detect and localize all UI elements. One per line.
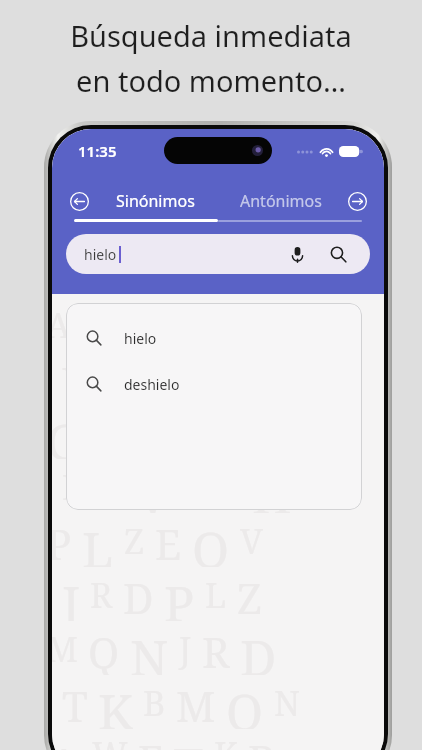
staticText: deshielo xyxy=(124,375,180,394)
staticText: A xyxy=(52,731,82,750)
staticText: T xyxy=(174,302,195,348)
staticText: R xyxy=(202,623,230,675)
staticText: T xyxy=(62,677,88,729)
staticText: U xyxy=(62,353,93,405)
staticText: L xyxy=(205,572,227,618)
button[interactable]: hielo xyxy=(66,234,370,274)
staticText: M xyxy=(176,677,216,729)
staticText: hielo xyxy=(124,329,157,348)
staticText: Z xyxy=(237,569,262,621)
button[interactable]: Previous xyxy=(66,188,92,214)
staticText: B xyxy=(143,680,166,726)
staticText: G xyxy=(52,407,82,459)
staticText: C xyxy=(141,356,162,402)
staticText: R xyxy=(90,572,113,618)
staticText: O xyxy=(192,515,230,567)
staticText: Búsqueda inmediata xyxy=(70,16,352,55)
staticText: V xyxy=(136,461,170,513)
staticText: H xyxy=(252,461,292,513)
button[interactable]: Search xyxy=(324,240,352,268)
button[interactable]: deshielo xyxy=(66,361,362,407)
staticText: K xyxy=(98,677,133,729)
staticText: E xyxy=(62,464,84,510)
staticText: P xyxy=(164,569,195,621)
staticText: Q xyxy=(226,677,264,729)
button[interactable]: Antónimos xyxy=(218,183,344,219)
staticText: J xyxy=(62,569,80,621)
staticText: P xyxy=(52,515,72,567)
staticText: F xyxy=(138,731,163,750)
button[interactable]: Next xyxy=(344,188,370,214)
staticText: B xyxy=(248,731,276,750)
staticText: W xyxy=(92,731,128,750)
staticText: N xyxy=(274,680,300,726)
staticText: B xyxy=(245,299,278,351)
staticText: V xyxy=(240,518,263,564)
staticText: K xyxy=(205,299,235,351)
staticText: L xyxy=(82,515,114,567)
staticText: O xyxy=(94,461,126,513)
staticText: J xyxy=(179,626,192,672)
button[interactable]: hielo xyxy=(66,315,362,361)
staticText: F xyxy=(134,299,164,351)
staticText: 11:35 xyxy=(78,141,117,161)
staticText: D xyxy=(240,623,277,675)
staticText: S xyxy=(103,353,131,405)
staticText: A xyxy=(172,353,202,405)
staticText: K xyxy=(214,731,238,750)
staticText: G xyxy=(180,464,205,510)
staticText: W xyxy=(80,299,124,351)
staticText: Q xyxy=(88,623,120,675)
staticText: E xyxy=(155,515,182,567)
staticText: A xyxy=(52,302,70,348)
button[interactable]: Voice search xyxy=(283,240,311,268)
staticText: N xyxy=(130,623,169,675)
staticText: M xyxy=(52,626,78,672)
staticText: Z xyxy=(124,518,145,564)
staticText: Antónimos xyxy=(240,190,322,212)
button[interactable]: Sinónimos xyxy=(92,183,218,219)
staticText: Y xyxy=(215,461,242,513)
staticText: Sinónimos xyxy=(116,190,195,212)
staticText: en todo momento… xyxy=(76,61,346,100)
staticText: hielo xyxy=(84,245,117,264)
staticText: D xyxy=(123,569,154,621)
